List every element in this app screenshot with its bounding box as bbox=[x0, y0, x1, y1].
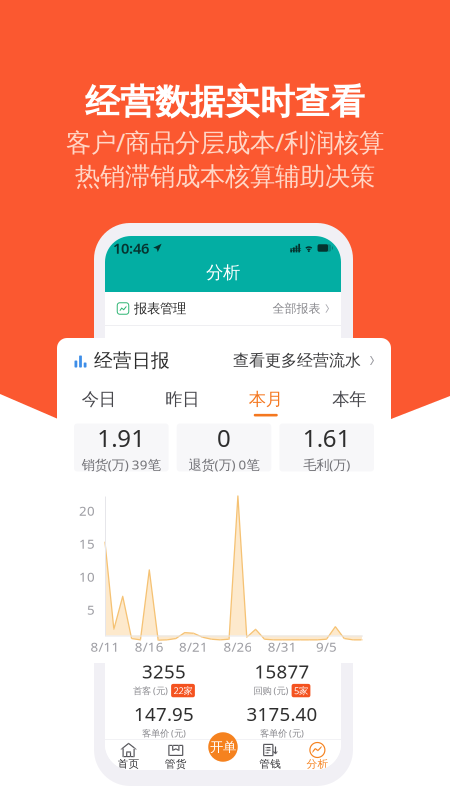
staticText: 经营数据实时查看 bbox=[85, 81, 365, 123]
staticText: 147.95 bbox=[134, 701, 194, 726]
staticText: 客单价 (元) bbox=[260, 727, 304, 739]
staticText: 本月 bbox=[249, 389, 283, 410]
staticText: 10 bbox=[79, 568, 95, 585]
staticText: 分析 bbox=[206, 262, 240, 283]
staticText: 3175.40 bbox=[246, 701, 317, 726]
staticText: 客户/商品分层成本/利润核算 bbox=[66, 125, 384, 159]
staticText: 热销滞销成本核算辅助决策 bbox=[75, 161, 375, 192]
staticText: 15 bbox=[79, 535, 95, 552]
staticText: 销货(万) 39笔 bbox=[82, 456, 161, 473]
staticText: 22家 bbox=[173, 684, 192, 697]
button[interactable]: 昨日 bbox=[140, 384, 224, 420]
staticText: 毛利(万) bbox=[303, 456, 350, 473]
staticText: 9/5 bbox=[316, 638, 337, 655]
staticText: 5家 bbox=[294, 684, 308, 697]
staticText: 报表管理 bbox=[134, 300, 186, 317]
button[interactable]: 管钱 bbox=[247, 740, 294, 770]
staticText: 20 bbox=[79, 502, 95, 519]
button[interactable]: 报表管理 bbox=[105, 292, 341, 325]
staticText: 3255 bbox=[142, 659, 186, 684]
button[interactable]: 开单 bbox=[206, 730, 240, 764]
staticText: 首客 (元) bbox=[133, 684, 168, 697]
staticText: 经营日报 bbox=[94, 349, 170, 372]
staticText: 15877 bbox=[254, 659, 309, 684]
staticText: 1.91 bbox=[97, 422, 145, 454]
staticText: 回购 (元) bbox=[254, 684, 289, 697]
staticText: 8/21 bbox=[179, 638, 208, 655]
staticText: 5 bbox=[87, 601, 95, 618]
staticText: 分析 bbox=[306, 757, 328, 771]
button[interactable]: 首页 bbox=[105, 740, 152, 770]
button[interactable]: 今日 bbox=[57, 384, 140, 420]
staticText: 全部报表 bbox=[272, 301, 320, 316]
staticText: 客单价 (元) bbox=[142, 727, 186, 739]
button[interactable]: 本年 bbox=[307, 384, 391, 420]
button[interactable]: 本月 bbox=[224, 384, 307, 420]
button[interactable]: 管货 bbox=[152, 740, 199, 770]
staticText: 0 bbox=[217, 422, 231, 454]
staticText: 8/16 bbox=[135, 638, 164, 655]
staticText: 8/31 bbox=[268, 638, 297, 655]
staticText: 首页 bbox=[118, 757, 140, 771]
button[interactable]: 分析 bbox=[294, 740, 341, 770]
staticText: 昨日 bbox=[165, 389, 199, 410]
staticText: 8/26 bbox=[223, 638, 252, 655]
staticText: 8/11 bbox=[90, 638, 119, 655]
staticText: 管钱 bbox=[259, 757, 281, 771]
staticText: 退货(万) 0笔 bbox=[188, 456, 259, 473]
staticText: 本年 bbox=[332, 389, 366, 410]
button[interactable]: 经营日报 bbox=[57, 336, 391, 384]
staticText: 管货 bbox=[165, 757, 187, 771]
staticText: 1.61 bbox=[303, 422, 351, 454]
staticText: 10:46 bbox=[113, 238, 149, 258]
staticText: 开单 bbox=[210, 739, 236, 755]
staticText: 今日 bbox=[82, 389, 116, 410]
staticText: 查看更多经营流水 bbox=[233, 351, 361, 370]
